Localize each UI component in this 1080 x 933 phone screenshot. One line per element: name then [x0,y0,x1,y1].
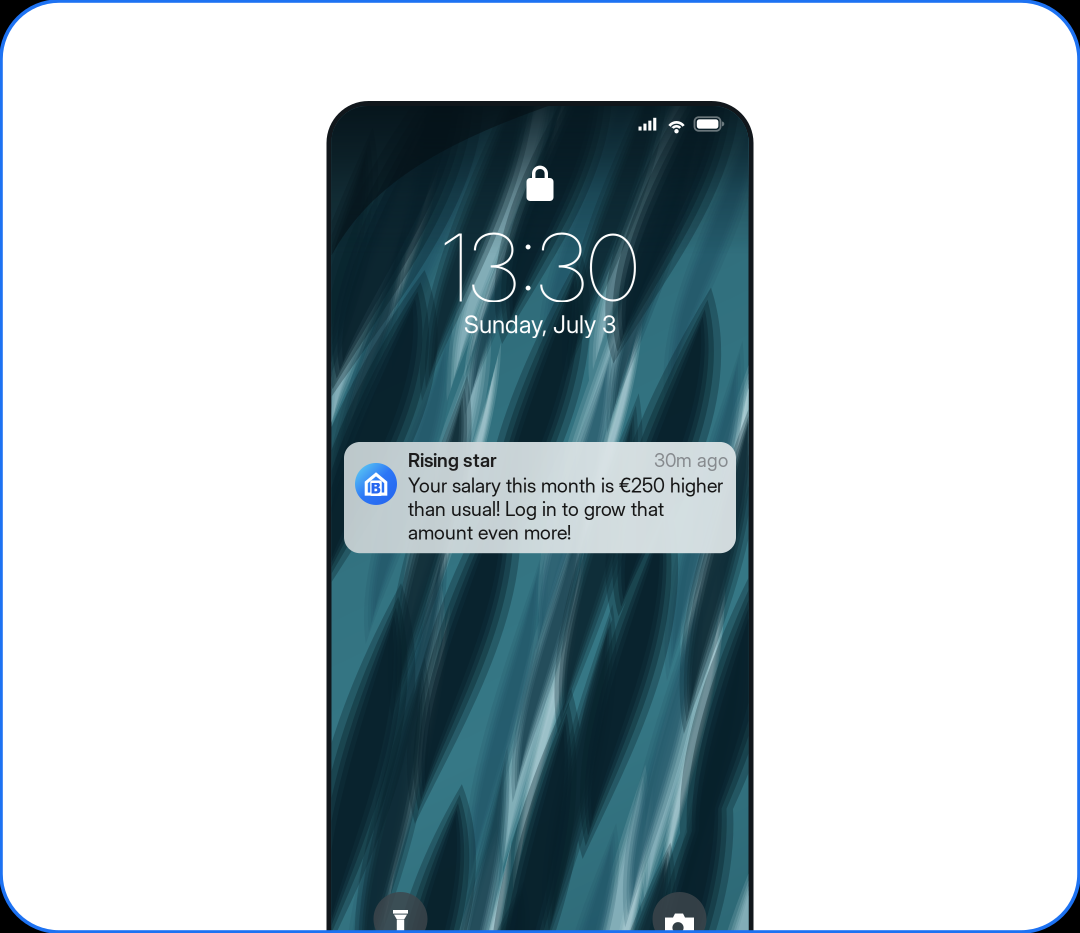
staticText: Sunday, July 3 [464,310,616,339]
staticText: 30m ago [654,449,728,472]
staticText: Your salary this month is €250 higher th… [408,474,723,544]
staticText: Rising star [408,449,497,472]
button[interactable]: Camera [652,892,706,933]
staticText: B [371,479,381,497]
button[interactable]: B [344,442,736,553]
staticText: 13:30 [441,211,639,324]
button[interactable]: Flashlight [373,892,427,933]
